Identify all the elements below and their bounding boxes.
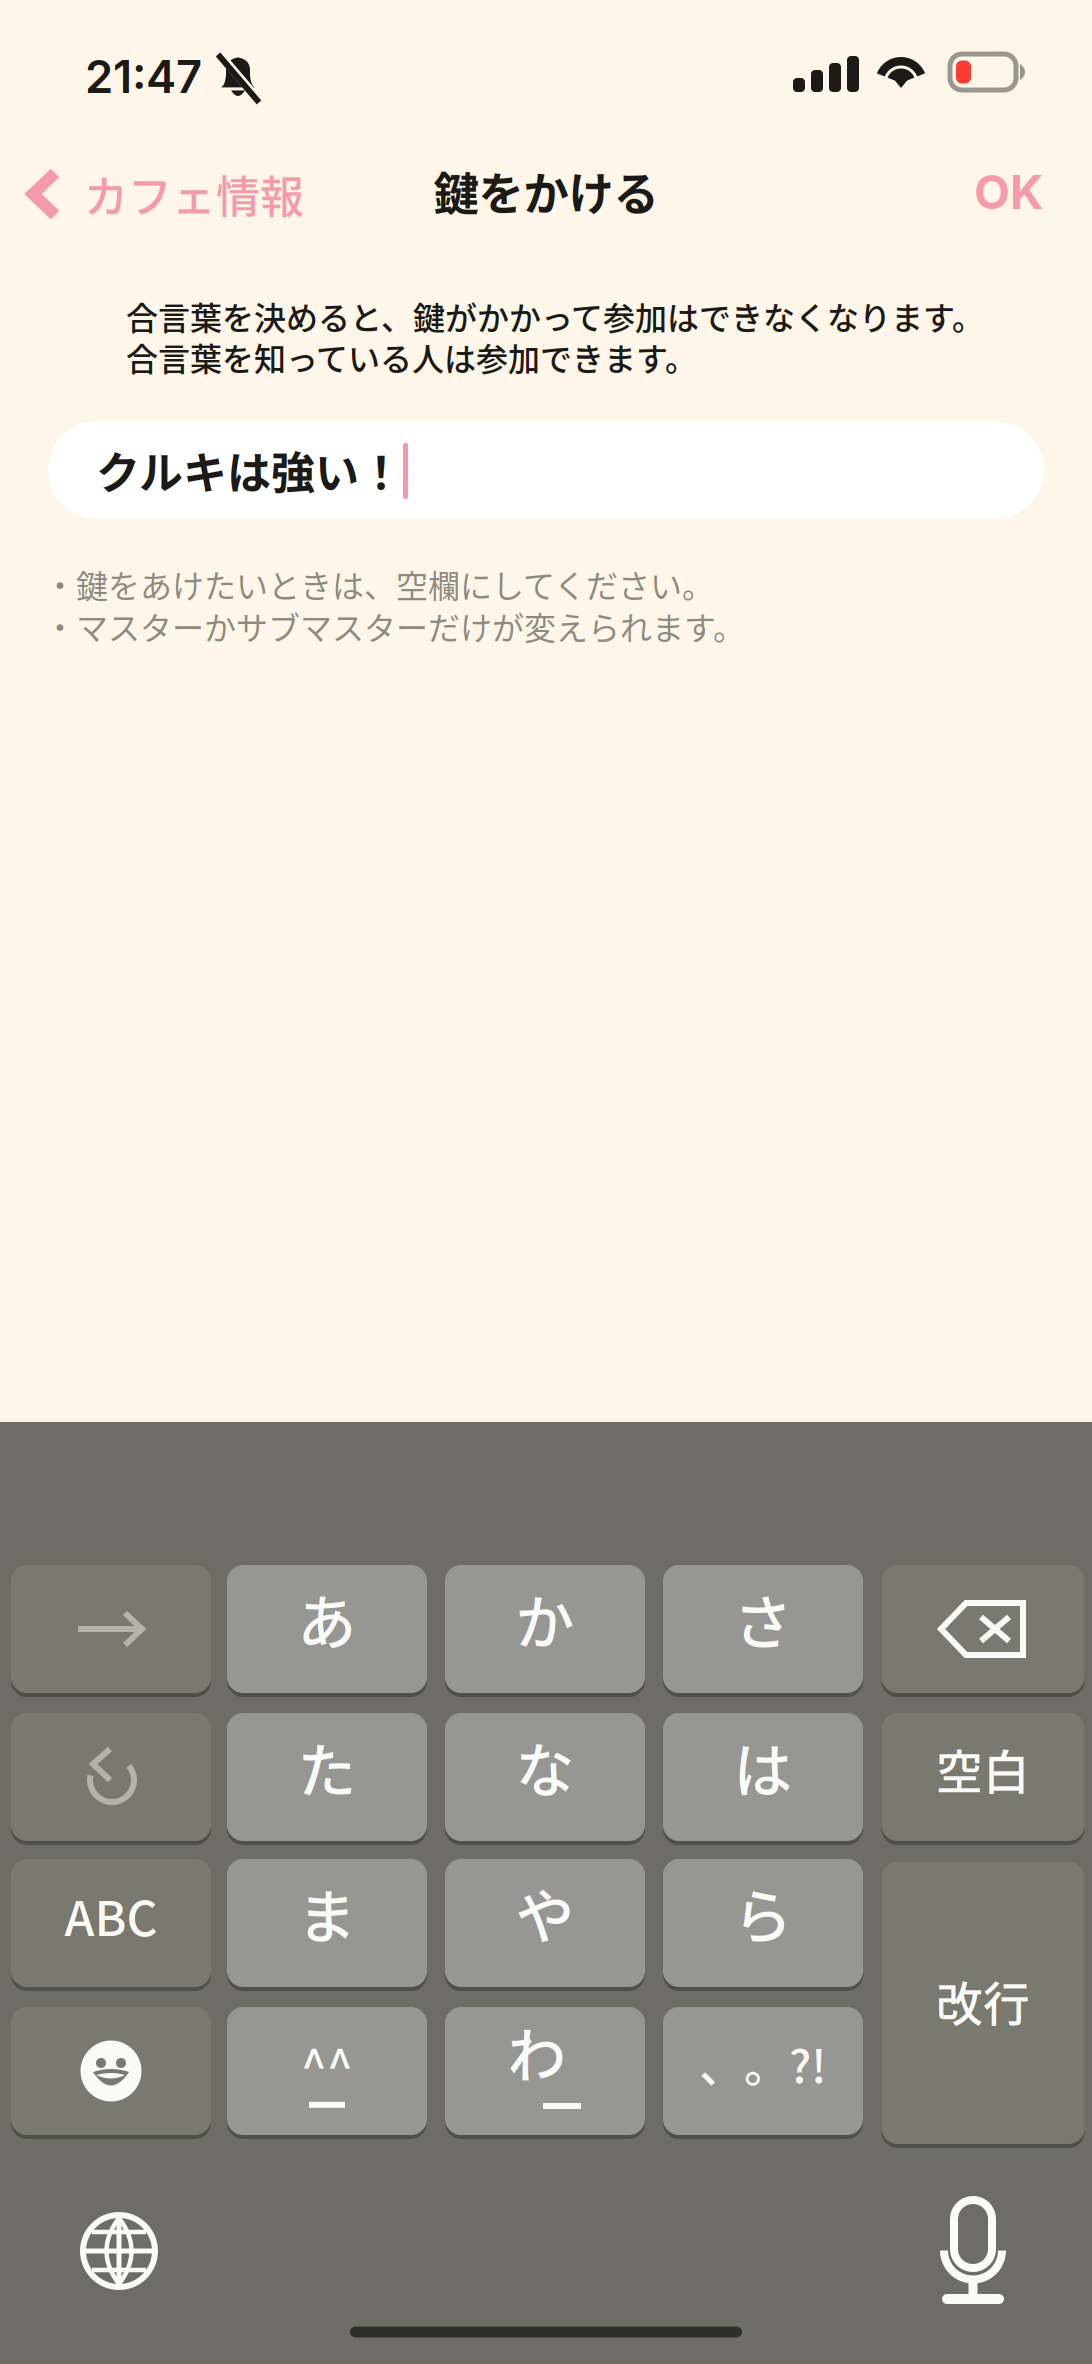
staticText: 鍵をかける	[433, 158, 658, 224]
staticText: た	[297, 1724, 356, 1809]
staticText: や	[515, 1870, 574, 1955]
button[interactable]: カフェ情報	[6, 142, 324, 246]
staticText: わ	[507, 2009, 566, 2094]
button[interactable]: さ	[663, 1563, 863, 1695]
button[interactable]: か	[445, 1563, 645, 1695]
staticText: 空白	[936, 1735, 1030, 1803]
button[interactable]: ま	[227, 1857, 427, 1989]
staticText: 、。?!	[699, 2030, 827, 2096]
staticText: ^^	[301, 2030, 353, 2096]
staticText: ら	[733, 1870, 792, 1955]
staticText: 合言葉を知っている人は参加できます。	[126, 334, 697, 380]
button[interactable]: 空白	[881, 1711, 1084, 1843]
button[interactable]: あ	[227, 1563, 427, 1695]
staticText: カフェ情報	[84, 162, 304, 226]
staticText: 21:47	[85, 49, 202, 104]
button[interactable]: ABC	[11, 1857, 211, 1989]
button[interactable]: Dictate	[927, 2195, 1019, 2307]
staticText: ・鍵をあけたいときは、空欄にしてください。	[44, 561, 714, 607]
button[interactable]: 、。?!	[663, 2005, 863, 2137]
button[interactable]: わ	[445, 2005, 645, 2137]
button[interactable]: た	[227, 1711, 427, 1843]
staticText: は	[733, 1724, 792, 1809]
staticText: あ	[297, 1576, 356, 1661]
button[interactable]	[881, 1563, 1084, 1695]
button[interactable]	[11, 1711, 211, 1843]
staticText: ABC	[64, 1880, 157, 1950]
button[interactable]: は	[663, 1711, 863, 1843]
staticText: 改行	[936, 1967, 1030, 2035]
staticText: クルキは強い！	[96, 438, 403, 502]
button[interactable]: ら	[663, 1857, 863, 1989]
staticText: 合言葉を決めると、鍵がかかって参加はできなくなります。	[126, 293, 984, 339]
button[interactable]: OK	[934, 140, 1084, 244]
button[interactable]: 改行	[881, 1860, 1084, 2146]
staticText: OK	[974, 164, 1044, 220]
button[interactable]: や	[445, 1857, 645, 1989]
button[interactable]	[11, 2005, 211, 2137]
button[interactable]: ^^	[227, 2005, 427, 2137]
staticText: か	[515, 1576, 574, 1661]
staticText: さ	[733, 1576, 792, 1661]
button[interactable]: な	[445, 1711, 645, 1843]
button[interactable]: Switch keyboard	[75, 2207, 163, 2295]
staticText: ・マスターかサブマスターだけが変えられます。	[44, 603, 745, 649]
staticText: ま	[297, 1870, 356, 1955]
staticText: な	[515, 1724, 574, 1809]
button[interactable]	[11, 1563, 211, 1695]
